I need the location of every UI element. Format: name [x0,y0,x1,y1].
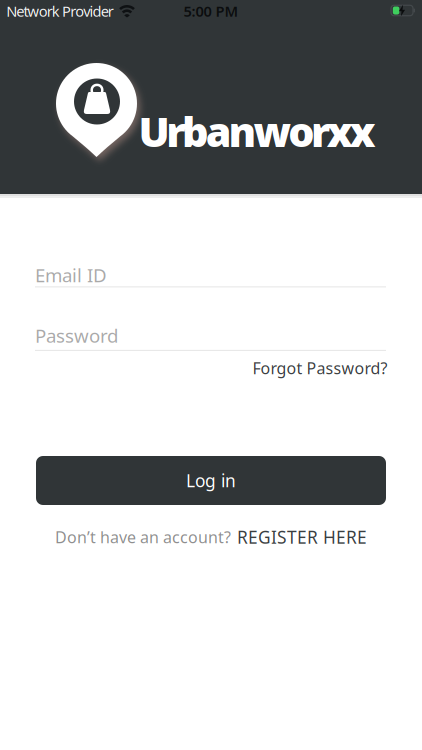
staticText: 5:00 PM [183,1,238,21]
staticText: Log in [186,469,236,492]
button[interactable]: Forgot Password? [252,357,387,379]
staticText: Network Provider [6,1,114,21]
staticText: Urbanworxx [138,104,376,158]
button[interactable]: REGISTER HERE [237,525,367,548]
button[interactable]: Password [35,323,386,351]
staticText: Don’t have an account? [55,526,231,548]
staticText: REGISTER HERE [237,525,367,548]
staticText: Forgot Password? [252,357,387,379]
button[interactable]: Log in [36,456,386,505]
staticText: Email ID [35,263,107,287]
staticText: Password [35,323,118,348]
button[interactable]: Email ID [35,263,386,287]
